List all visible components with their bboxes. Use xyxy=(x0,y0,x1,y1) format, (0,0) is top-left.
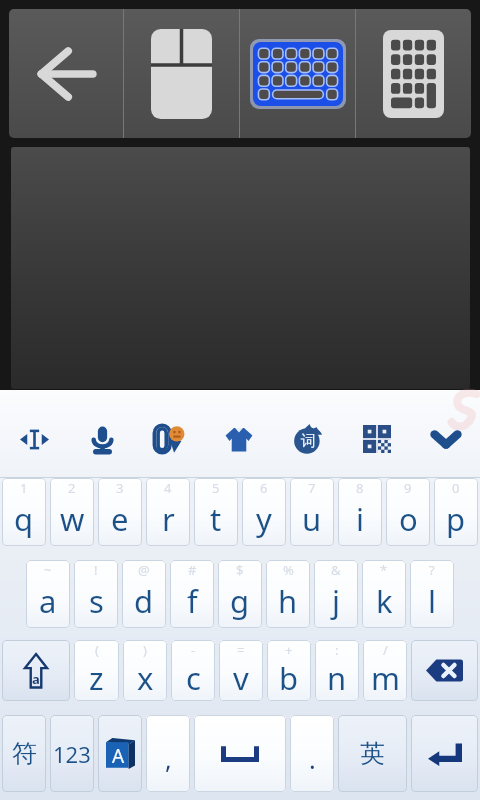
button[interactable]: Hide keyboard xyxy=(411,412,480,466)
button[interactable]: Touchpad xyxy=(11,147,470,389)
staticText: m xyxy=(371,657,400,699)
staticText: n xyxy=(327,657,347,699)
button[interactable]: ! xyxy=(74,560,118,628)
button[interactable]: Space xyxy=(194,715,286,792)
staticText: k xyxy=(376,580,393,622)
staticText: / xyxy=(383,641,388,659)
button[interactable]: ? xyxy=(410,560,454,628)
staticText: 符 xyxy=(12,738,37,769)
staticText: q xyxy=(14,498,34,540)
button[interactable]: ) xyxy=(123,640,167,701)
staticText: 5 xyxy=(212,479,220,497)
button[interactable]: Dictionary xyxy=(273,412,342,466)
staticText: = xyxy=(237,641,245,659)
staticText: 3 xyxy=(116,479,124,497)
button[interactable]: Shift xyxy=(2,640,70,701)
staticText: s xyxy=(89,580,104,622)
staticText: ( xyxy=(95,641,99,659)
button[interactable]: Numeric keypad xyxy=(356,9,471,138)
staticText: @ xyxy=(138,561,150,579)
staticText: & xyxy=(331,561,341,579)
staticText: 英 xyxy=(360,738,385,769)
button[interactable]: . xyxy=(290,715,334,792)
button[interactable]: 5 xyxy=(194,478,238,546)
button[interactable]: @ xyxy=(122,560,166,628)
button[interactable]: 3 xyxy=(98,478,142,546)
staticText: g xyxy=(230,580,250,622)
staticText: 6 xyxy=(260,479,268,497)
staticText: % xyxy=(283,561,294,579)
staticText: ! xyxy=(94,561,98,579)
button[interactable]: Theme xyxy=(204,412,273,466)
staticText: j xyxy=(332,580,340,622)
button[interactable]: 6 xyxy=(242,478,286,546)
staticText: l xyxy=(428,580,436,622)
staticText: z xyxy=(89,657,104,699)
staticText: 0 xyxy=(452,479,460,497)
staticText: v xyxy=(233,657,249,699)
staticText: + xyxy=(285,641,293,659)
button[interactable]: # xyxy=(170,560,214,628)
staticText: 1 xyxy=(20,479,28,497)
button[interactable]: * xyxy=(362,560,406,628)
button[interactable]: ( xyxy=(74,640,119,701)
button[interactable]: Backspace xyxy=(411,640,478,701)
button[interactable]: 英 xyxy=(338,715,407,792)
staticText: . xyxy=(309,742,316,776)
button[interactable]: 8 xyxy=(338,478,382,546)
staticText: 词 xyxy=(301,432,316,451)
staticText: A xyxy=(112,743,125,769)
button[interactable]: Switch input method xyxy=(98,715,142,792)
button[interactable]: Voice input xyxy=(68,412,136,466)
staticText: : xyxy=(335,641,339,659)
button[interactable]: & xyxy=(314,560,358,628)
button[interactable]: Mouse xyxy=(124,9,239,138)
staticText: w xyxy=(60,498,85,540)
button[interactable]: Enter xyxy=(411,715,478,792)
staticText: b xyxy=(279,657,299,699)
button[interactable]: Scan QR code xyxy=(342,412,411,466)
staticText: 8 xyxy=(356,479,364,497)
staticText: 4 xyxy=(164,479,172,497)
button[interactable]: 123 xyxy=(50,715,94,792)
staticText: # xyxy=(188,561,197,579)
staticText: a xyxy=(39,580,57,622)
staticText: 7 xyxy=(308,479,316,497)
button[interactable]: 4 xyxy=(146,478,190,546)
button[interactable]: 9 xyxy=(386,478,430,546)
staticText: i xyxy=(356,498,364,540)
staticText: o xyxy=(399,498,418,540)
button[interactable]: 2 xyxy=(50,478,94,546)
button[interactable]: 7 xyxy=(290,478,334,546)
button[interactable]: 1 xyxy=(2,478,46,546)
button[interactable]: Back xyxy=(9,9,123,138)
button[interactable]: 0 xyxy=(434,478,478,546)
staticText: 2 xyxy=(68,479,76,497)
button[interactable]: = xyxy=(219,640,263,701)
staticText: e xyxy=(111,498,129,540)
button[interactable]: : xyxy=(315,640,359,701)
staticText: t xyxy=(210,498,222,540)
button[interactable]: $ xyxy=(218,560,262,628)
button[interactable]: Keyboard xyxy=(240,9,355,138)
button[interactable]: / xyxy=(363,640,407,701)
staticText: p xyxy=(446,498,466,540)
button[interactable]: , xyxy=(146,715,190,792)
button[interactable]: 符 xyxy=(2,715,46,792)
staticText: * xyxy=(380,561,388,579)
staticText: c xyxy=(186,657,201,699)
staticText: a xyxy=(32,670,40,688)
button[interactable]: Move cursor xyxy=(0,412,68,466)
staticText: f xyxy=(187,580,198,622)
staticText: ? xyxy=(429,561,435,579)
staticText: , xyxy=(165,742,172,776)
button[interactable]: + xyxy=(267,640,311,701)
staticText: x xyxy=(137,657,154,699)
button[interactable]: Attach xyxy=(136,412,204,466)
button[interactable]: ~ xyxy=(26,560,70,628)
staticText: u xyxy=(302,498,322,540)
staticText: 9 xyxy=(404,479,412,497)
staticText: h xyxy=(278,580,298,622)
button[interactable]: - xyxy=(171,640,215,701)
button[interactable]: % xyxy=(266,560,310,628)
